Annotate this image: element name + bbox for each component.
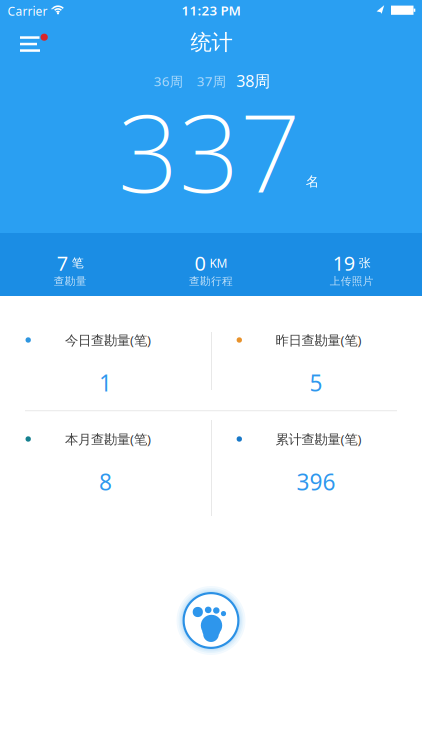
staticText: 36周 — [154, 72, 183, 90]
staticText: 11:23 PM — [181, 1, 240, 19]
staticText: 统计 — [190, 29, 232, 56]
staticText: 7 — [57, 250, 68, 276]
staticText: Carrier — [7, 3, 47, 19]
staticText: 1 — [99, 368, 112, 398]
button[interactable]: 38周 — [231, 69, 275, 93]
button[interactable]: 36周 — [148, 70, 188, 92]
staticText: 名 — [306, 173, 319, 190]
button[interactable]: 37周 — [191, 70, 231, 92]
staticText: 今日查勘量(笔) — [65, 331, 151, 349]
staticText: 上传照片 — [330, 275, 374, 288]
staticText: 张 — [359, 256, 371, 270]
staticText: 查勘量 — [54, 275, 87, 288]
staticText: 396 — [296, 466, 335, 497]
staticText: 昨日查勘量(笔) — [275, 331, 361, 349]
staticText: 38周 — [236, 70, 270, 91]
staticText: 查勘行程 — [189, 275, 233, 288]
staticText: 笔 — [72, 256, 84, 270]
staticText: 19 — [333, 250, 355, 276]
staticText: 8 — [99, 466, 112, 497]
staticText: 5 — [309, 368, 322, 398]
staticText: 累计查勘量(笔) — [275, 430, 361, 448]
button[interactable]: Menu — [12, 28, 52, 60]
staticText: 0 — [194, 250, 205, 276]
button[interactable]: 查勘足迹 — [175, 585, 246, 656]
staticText: 337 — [118, 80, 301, 222]
staticText: KM — [209, 255, 227, 271]
staticText: 本月查勘量(笔) — [65, 430, 151, 448]
staticText: 37周 — [197, 72, 226, 90]
